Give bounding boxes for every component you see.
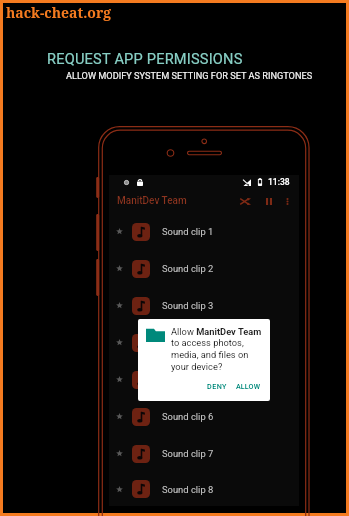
button[interactable]: Sound clip 5: [109, 361, 299, 398]
staticText: Sound clip 4: [162, 337, 214, 348]
staticText: Allow ManitDev Team to access photos, me…: [171, 326, 264, 373]
button[interactable]: Sound clip 6: [109, 398, 299, 435]
staticText: 11:38: [268, 177, 290, 187]
staticText: ManitDev Team: [117, 195, 187, 207]
button[interactable]: Sound clip 8: [109, 472, 299, 506]
button[interactable]: Sound clip 4: [109, 324, 299, 361]
staticText: Sound clip 3: [162, 300, 214, 311]
button[interactable]: Sound clip 1: [109, 213, 299, 250]
button[interactable]: Shuffle: [236, 192, 255, 210]
staticText: REQUEST APP PERMISSIONS: [47, 50, 243, 67]
button[interactable]: DENY: [201, 377, 233, 395]
staticText: ALLOW MODIFY SYSTEM SETTING FOR SET AS R…: [66, 70, 313, 81]
staticText: Sound clip 1: [162, 226, 214, 237]
staticText: ALLOW: [236, 382, 261, 390]
staticText: Sound clip 7: [162, 448, 214, 459]
button[interactable]: More options: [278, 192, 296, 210]
staticText: hack-cheat.org: [6, 3, 112, 22]
button[interactable]: ALLOW: [230, 377, 267, 395]
staticText: Sound clip 2: [162, 263, 214, 274]
button[interactable]: Sound clip 7: [109, 435, 299, 472]
staticText: Sound clip 5: [162, 374, 214, 385]
button[interactable]: Pause: [260, 192, 278, 210]
button[interactable]: Sound clip 2: [109, 250, 299, 287]
staticText: Sound clip 6: [162, 411, 214, 422]
staticText: DENY: [207, 382, 227, 390]
button[interactable]: Sound clip 3: [109, 287, 299, 324]
staticText: Sound clip 8: [162, 484, 214, 495]
